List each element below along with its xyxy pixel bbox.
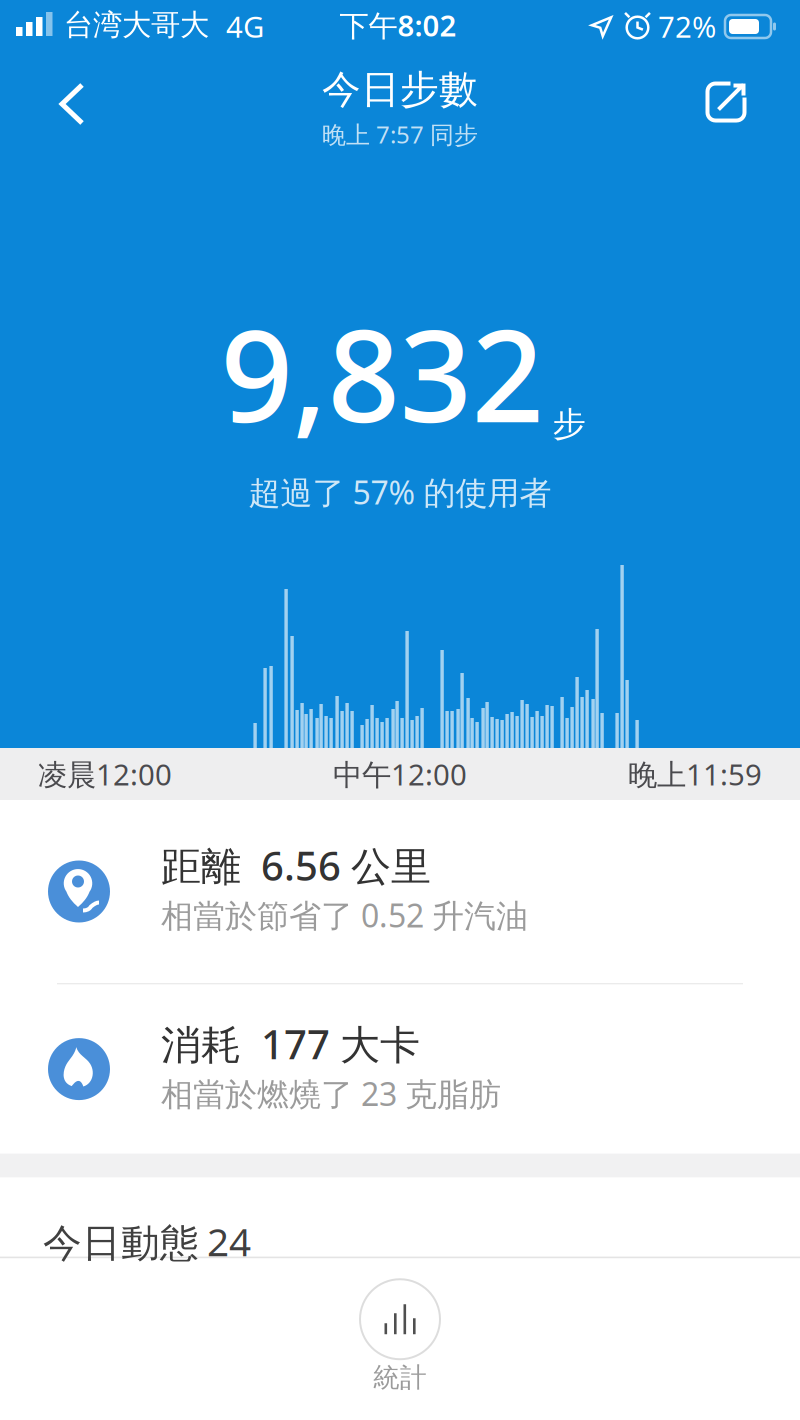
button[interactable]: 返回 — [42, 73, 102, 135]
staticText: 相當於燃燒了 23 克脂肪 — [161, 1072, 501, 1115]
staticText: 今日動態 — [43, 1220, 199, 1267]
button[interactable]: 距離 6.56 公里 — [0, 800, 800, 983]
staticText: 中午12:00 — [333, 754, 467, 793]
staticText: 24 — [207, 1216, 251, 1267]
staticText: 今日步數 — [322, 66, 478, 113]
staticText: 台湾大哥大 — [64, 7, 209, 43]
staticText: 4G — [226, 7, 264, 46]
staticText: 消耗 177 大卡 — [161, 1017, 420, 1070]
button[interactable]: 分享 — [695, 71, 756, 132]
staticText: 超過了 57% 的使用者 — [248, 471, 551, 513]
staticText: 步 — [552, 404, 585, 444]
staticText: 9,832 — [220, 289, 543, 457]
staticText: 統計 — [373, 1361, 427, 1394]
staticText: 晚上 7:57 同步 — [322, 118, 478, 150]
button[interactable]: 統計 — [360, 1279, 440, 1420]
staticText: 下午8:02 — [339, 5, 456, 44]
button[interactable]: 消耗 177 大卡 — [0, 985, 800, 1154]
staticText: 72% — [658, 7, 716, 46]
staticText: 距離 6.56 公里 — [161, 839, 431, 892]
staticText: 相當於節省了 0.52 升汽油 — [161, 894, 528, 936]
staticText: 凌晨12:00 — [38, 754, 172, 793]
staticText: 晚上11:59 — [628, 754, 762, 793]
